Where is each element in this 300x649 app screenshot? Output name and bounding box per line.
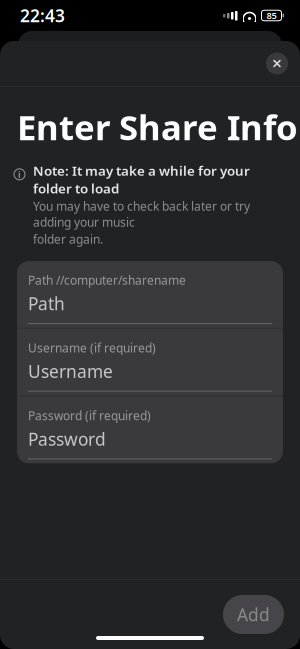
staticText: Username — [28, 360, 113, 383]
button[interactable]: Path //computer/sharename — [17, 261, 283, 328]
staticText: Password — [28, 427, 106, 450]
staticText: Username (if required) — [28, 340, 156, 356]
button[interactable]: Username (if required) — [17, 329, 283, 396]
staticText: Password (if required) — [28, 408, 151, 423]
staticText: You may have to check back later or try … — [33, 198, 250, 230]
button[interactable]: Add — [223, 595, 284, 634]
staticText: Note: It may take a while for your folde… — [33, 162, 250, 197]
staticText: folder again. — [33, 231, 103, 247]
staticText: Path //computer/sharename — [28, 272, 186, 288]
staticText: Path — [28, 292, 65, 315]
button[interactable]: Close — [260, 46, 294, 80]
staticText: 85 — [266, 9, 276, 22]
staticText: 22:43 — [20, 4, 65, 27]
button[interactable]: Password (if required) — [17, 397, 283, 463]
staticText: Add — [237, 603, 270, 626]
staticText: Enter Share Info — [17, 104, 298, 150]
staticText: i — [18, 168, 21, 180]
